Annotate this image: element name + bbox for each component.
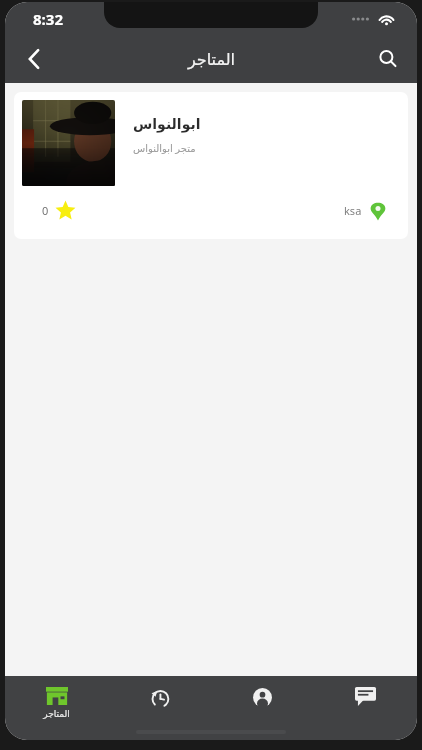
button[interactable]: Back <box>5 35 63 83</box>
staticText: ksa <box>344 203 362 218</box>
button[interactable]: Search <box>359 35 417 83</box>
button[interactable]: History <box>108 676 211 740</box>
button[interactable]: Account <box>211 676 314 740</box>
button[interactable]: Chat <box>314 676 417 740</box>
staticText: المتاجر <box>188 50 235 69</box>
staticText: 0 <box>42 203 49 218</box>
button[interactable]: المتاجر <box>5 676 108 740</box>
staticText: 8:32 <box>33 9 63 29</box>
button[interactable]: ابوالنواس <box>14 92 408 239</box>
staticText: متجر ابوالنواس <box>133 141 196 155</box>
staticText: المتاجر <box>43 709 70 719</box>
staticText: ابوالنواس <box>133 116 201 132</box>
